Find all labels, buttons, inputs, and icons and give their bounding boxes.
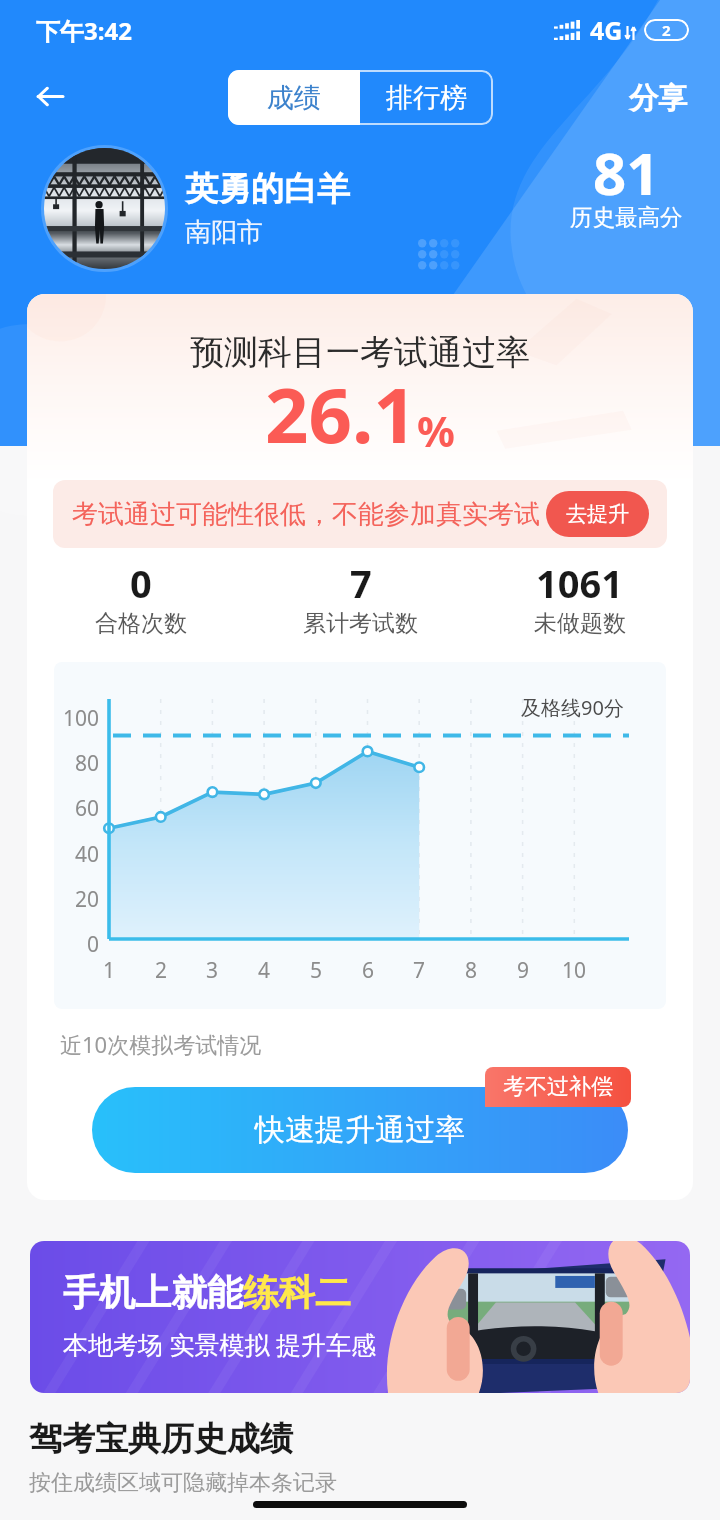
staticText: 驾考宝典历史成绩 — [29, 1418, 293, 1460]
staticText: 未做题数 — [534, 609, 626, 638]
staticText: 近10次模拟考试情况 — [60, 1029, 262, 1059]
button[interactable]: 成绩 — [228, 70, 360, 125]
staticText: 英勇的白羊 — [185, 168, 350, 210]
staticText: 60 — [75, 794, 100, 822]
staticText: 本地考场 实景模拟 提升车感 — [63, 1327, 377, 1361]
staticText: % — [417, 402, 455, 459]
button[interactable]: 排行榜 — [360, 70, 493, 125]
staticText: 7 — [413, 956, 426, 984]
button[interactable]: 手机上就能 — [30, 1241, 690, 1393]
staticText: 0 — [130, 557, 152, 609]
button[interactable]: Back — [22, 68, 78, 124]
staticText: 3 — [206, 956, 219, 984]
staticText: 考试通过可能性很低，不能参加真实考试 — [72, 498, 540, 531]
staticText: 历史最高分 — [570, 203, 683, 231]
button[interactable]: 快速提升通过率 — [92, 1087, 628, 1173]
staticText: 26.1 — [265, 362, 417, 466]
staticText: 80 — [75, 749, 100, 777]
staticText: 快速提升通过率 — [255, 1111, 465, 1149]
staticText: 10 — [562, 956, 587, 984]
staticText: 6 — [362, 956, 375, 984]
staticText: 40 — [75, 840, 100, 868]
staticText: 2 — [662, 20, 671, 40]
staticText: 5 — [310, 956, 323, 984]
staticText: 1061 — [536, 557, 623, 609]
staticText: 累计考试数 — [303, 609, 418, 638]
staticText: 及格线90分 — [521, 694, 624, 721]
staticText: 预测科目一考试通过率 — [27, 331, 693, 374]
staticText: 南阳市 — [185, 216, 263, 249]
button[interactable]: 分享 — [613, 70, 720, 123]
staticText: 7 — [350, 557, 372, 609]
staticText: 成绩 — [267, 81, 321, 115]
staticText: 8 — [465, 956, 478, 984]
staticText: 合格次数 — [95, 609, 187, 638]
staticText: 去提升 — [566, 501, 629, 527]
staticText: 排行榜 — [386, 81, 467, 115]
button[interactable]: 去提升 — [546, 491, 649, 537]
staticText: 20 — [75, 885, 100, 913]
staticText: 0 — [87, 930, 100, 958]
staticText: 4 — [258, 956, 271, 984]
staticText: 按住成绩区域可隐藏掉本条记录 — [29, 1469, 337, 1497]
staticText: 考不过补偿 — [503, 1073, 613, 1101]
staticText: 分享 — [629, 80, 687, 117]
staticText: 2 — [155, 956, 168, 984]
staticText: 手机上就能 — [63, 1270, 243, 1315]
staticText: 1 — [103, 956, 116, 984]
staticText: 练科二 — [243, 1270, 351, 1315]
staticText: 9 — [517, 956, 530, 984]
staticText: 100 — [63, 704, 100, 732]
staticText: 4G — [590, 13, 623, 47]
button[interactable]: Avatar — [44, 148, 165, 269]
staticText: 81 — [593, 133, 660, 212]
staticText: 下午3:42 — [36, 14, 132, 47]
